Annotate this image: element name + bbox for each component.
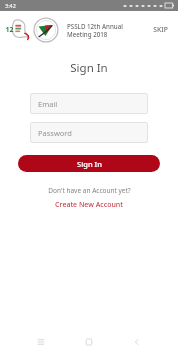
staticText: 12 xyxy=(5,25,14,35)
button[interactable]: SKIP xyxy=(148,21,173,38)
staticText: Sign In xyxy=(77,159,102,169)
button[interactable]: Recent apps xyxy=(26,329,56,355)
staticText: SKIP xyxy=(153,25,168,34)
button[interactable]: Create New Account xyxy=(51,199,127,211)
staticText: Email xyxy=(38,99,58,109)
button[interactable]: Sign In xyxy=(18,155,160,172)
button[interactable]: Password xyxy=(30,122,148,143)
button[interactable]: Email xyxy=(30,93,148,114)
staticText: Don't have an Account yet? xyxy=(48,186,131,195)
staticText: Meeting 2018 xyxy=(67,30,108,38)
staticText: 3:42 xyxy=(5,2,16,9)
staticText: PSSLD 12th Annual xyxy=(67,22,123,30)
button[interactable]: Home xyxy=(74,329,104,355)
staticText: Create New Account xyxy=(55,200,123,210)
staticText: Sign In xyxy=(70,60,108,76)
staticText: Password xyxy=(38,128,72,138)
